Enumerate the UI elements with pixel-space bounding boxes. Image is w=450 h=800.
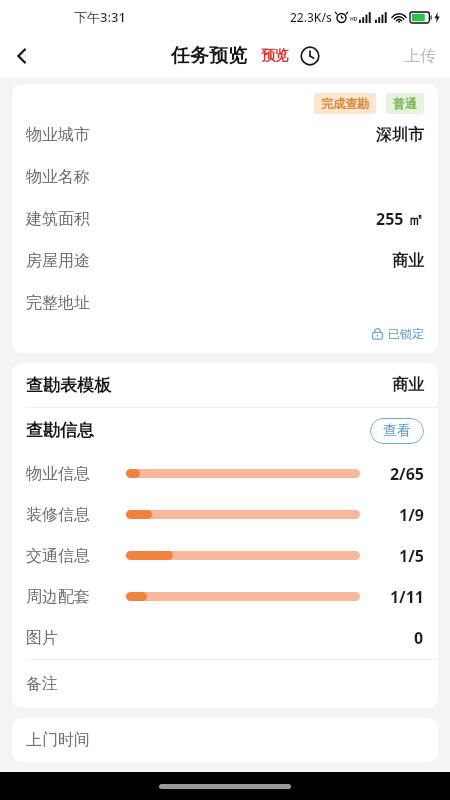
staticText: 物业名称 (26, 167, 90, 187)
staticText: 建筑面积 (26, 209, 90, 229)
staticText: 深圳市 (376, 125, 424, 145)
staticText: 商业 (392, 251, 424, 271)
staticText: 查看 (383, 422, 411, 440)
staticText: 已锁定 (388, 326, 424, 341)
staticText: 交通信息 (26, 546, 116, 566)
staticText: 备注 (26, 674, 58, 694)
staticText: 下午3:31 (74, 8, 126, 26)
staticText: 普通 (393, 96, 417, 111)
staticText: 房屋用途 (26, 251, 90, 271)
button[interactable]: 上传 (404, 46, 436, 66)
button[interactable]: 图片 (12, 617, 438, 659)
staticText: 周边配套 (26, 587, 116, 607)
staticText: 查勘信息 (26, 420, 94, 441)
staticText: 22.3K/s (290, 9, 332, 25)
button[interactable]: 备注 (12, 660, 438, 708)
staticText: 1/11 (389, 586, 424, 608)
staticText: 255 ㎡ (376, 208, 424, 230)
button[interactable]: 上门时间 (12, 718, 438, 762)
button[interactable]: 返回 (0, 34, 44, 78)
staticText: 完成查勘 (321, 96, 369, 111)
button[interactable]: 历史记录 (297, 43, 323, 69)
staticText: 物业城市 (26, 125, 90, 145)
staticText: 上传 (404, 46, 436, 66)
button[interactable]: 物业信息 (12, 453, 438, 494)
button[interactable]: 查看 (370, 418, 424, 444)
staticText: 物业信息 (26, 464, 116, 484)
staticText: 完整地址 (26, 293, 90, 313)
staticText: 任务预览 (171, 44, 247, 68)
button[interactable]: 已锁定 (371, 326, 424, 341)
staticText: 预览 (261, 47, 289, 65)
button[interactable]: 查勘表模板 (12, 363, 438, 407)
staticText: 商业 (392, 375, 424, 395)
button[interactable]: 周边配套 (12, 576, 438, 617)
staticText: 1/5 (399, 545, 424, 567)
staticText: 上门时间 (26, 730, 90, 750)
button[interactable]: 交通信息 (12, 535, 438, 576)
staticText: HD (350, 16, 358, 23)
staticText: 2/65 (389, 463, 424, 485)
button[interactable]: 装修信息 (12, 494, 438, 535)
button[interactable]: 预览 (261, 47, 289, 65)
staticText: 查勘表模板 (26, 375, 111, 396)
staticText: 1/9 (399, 504, 424, 526)
staticText: 图片 (26, 628, 58, 648)
staticText: 0 (414, 627, 424, 649)
staticText: 装修信息 (26, 505, 116, 525)
